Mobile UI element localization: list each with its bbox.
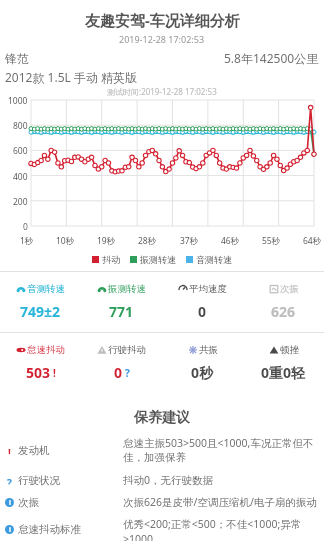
staticText: 0 — [23, 221, 28, 233]
staticText: 1秒 — [20, 235, 34, 247]
staticText: 600 — [13, 145, 28, 157]
staticText: 音测转速 — [196, 254, 232, 265]
staticText: 0 — [198, 302, 207, 321]
button[interactable]: 次振 — [243, 272, 324, 332]
staticText: 共振 — [199, 344, 218, 356]
staticText: 0重0轻 — [261, 363, 306, 382]
staticText: 保养建议 — [134, 409, 190, 427]
staticText: 200 — [13, 196, 28, 208]
staticText: 测试时间:2019-12-28 17:02:53 — [107, 86, 217, 97]
staticText: ? — [7, 476, 12, 485]
staticText: 2019-12-28 17:02:53 — [119, 33, 205, 45]
staticText: 顿挫 — [280, 344, 299, 356]
staticText: 10秒 — [56, 235, 75, 247]
staticText: 37秒 — [180, 235, 199, 247]
staticText: 锋范 — [5, 51, 29, 66]
staticText: 行驶抖动 — [108, 344, 146, 356]
staticText: 音测转速 — [27, 283, 65, 295]
staticText: 0秒 — [191, 363, 214, 382]
staticText: 46秒 — [221, 235, 240, 247]
staticText: i — [9, 498, 11, 507]
staticText: 2012款 1.5L 手动 精英版 — [5, 69, 138, 85]
staticText: 振测转速 — [140, 254, 176, 265]
button[interactable]: 怠速抖动 — [0, 333, 81, 393]
staticText: 5.8年142500公里 — [224, 50, 319, 66]
staticText: 怠速主振503>500且<1000,车况正常但不佳，加强保养 — [123, 436, 318, 465]
staticText: 友趣安驾-车况详细分析 — [85, 10, 240, 30]
button[interactable]: 行驶抖动 — [81, 333, 162, 393]
staticText: 19秒 — [97, 235, 116, 247]
staticText: 怠速抖动 — [27, 344, 65, 356]
staticText: 626 — [271, 302, 296, 321]
staticText: 800 — [13, 120, 28, 132]
button[interactable]: 顿挫 — [243, 333, 324, 393]
staticText: 抖动 — [102, 254, 120, 265]
staticText: 行驶状况 — [18, 474, 60, 487]
staticText: ! — [53, 366, 56, 380]
staticText: 503 — [26, 363, 51, 382]
staticText: i — [9, 525, 11, 534]
button[interactable]: 平均速度 — [162, 272, 243, 332]
staticText: 28秒 — [138, 235, 157, 247]
staticText: 749±2 — [20, 302, 61, 321]
staticText: 55秒 — [262, 235, 281, 247]
staticText: 次振 — [280, 283, 299, 295]
staticText: 次振 — [18, 496, 39, 509]
staticText: 0 — [114, 363, 123, 382]
staticText: 抖动0，无行驶数据 — [123, 473, 318, 487]
button[interactable]: 振测转速 — [81, 272, 162, 332]
staticText: 771 — [109, 302, 134, 321]
staticText: ? — [125, 366, 130, 380]
staticText: 400 — [13, 171, 28, 183]
staticText: 优秀<200;正常<500；不佳<1000;异常>1000 — [123, 517, 318, 541]
staticText: 1000 — [8, 95, 28, 107]
staticText: 怠速抖动标准 — [18, 523, 81, 536]
staticText: 次振626是皮带/空调压缩机/电子扇的振动 — [123, 495, 318, 509]
button[interactable]: 共振 — [162, 333, 243, 393]
staticText: 发动机 — [18, 444, 50, 457]
staticText: 平均速度 — [189, 283, 227, 295]
button[interactable]: 音测转速 — [0, 272, 81, 332]
staticText: 振测转速 — [108, 283, 146, 295]
staticText: ! — [8, 446, 11, 455]
staticText: 64秒 — [303, 235, 322, 247]
